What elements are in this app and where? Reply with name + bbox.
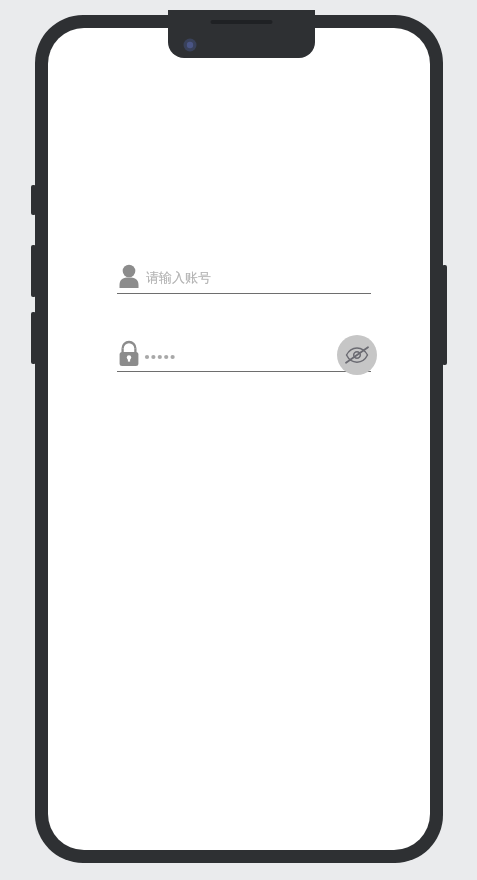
button[interactable]: 请输入账号 <box>117 262 371 294</box>
staticText: 请输入账号 <box>146 269 211 285</box>
button[interactable] <box>117 339 371 371</box>
button[interactable]: Show password <box>337 335 377 375</box>
